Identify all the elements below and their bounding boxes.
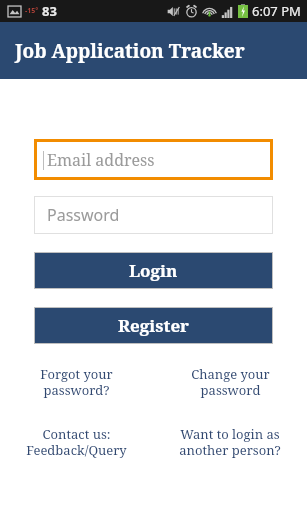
staticText: 6:07 PM [252,2,301,20]
staticText: -15° [25,6,39,16]
staticText: Forgot your password? [40,365,113,398]
button[interactable]: Change your password [153,365,307,398]
staticText: Email address [47,149,155,171]
staticText: Register [118,314,190,337]
staticText: Login [129,259,178,282]
staticText: Contact us: Feedback/Query [26,425,127,458]
button[interactable]: Want to login as another person? [153,425,307,458]
button[interactable]: Password [34,196,273,234]
staticText: Job Application Tracker [15,38,245,64]
button[interactable]: Forgot your password? [0,365,153,398]
staticText: Change your password [191,365,270,398]
staticText: 83 [42,2,57,20]
button[interactable]: Email address [34,139,273,180]
staticText: Password [47,204,120,226]
button[interactable]: Login [34,252,273,289]
staticText: Want to login as another person? [179,425,281,458]
button[interactable]: Contact us: Feedback/Query [0,425,153,458]
button[interactable]: Register [34,307,273,344]
